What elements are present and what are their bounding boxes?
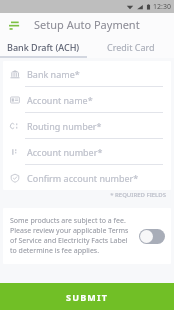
staticText: Bank Draft (ACH)	[7, 41, 80, 53]
staticText: Credit Card	[107, 41, 155, 53]
button[interactable]: Bank name*	[3, 61, 171, 87]
staticText: Some products are subject to a fee. Plea…	[10, 216, 134, 256]
staticText: 12:30	[153, 2, 171, 12]
staticText: Setup Auto Payment	[34, 17, 140, 32]
button[interactable]: Open navigation menu	[6, 17, 22, 33]
button[interactable]: SUBMIT	[0, 283, 174, 310]
staticText: Bank name*	[27, 68, 80, 80]
button[interactable]: Account name*	[3, 87, 171, 113]
button[interactable]: Routing number*	[3, 113, 171, 139]
button[interactable]: Bank Draft (ACH)	[0, 36, 87, 58]
button[interactable]: Confirm account number*	[3, 165, 171, 190]
staticText: Account number*	[27, 146, 103, 158]
staticText: Account name*	[27, 94, 93, 106]
button[interactable]: Toggle fee acknowledgement	[139, 229, 165, 244]
button[interactable]: Account number*	[3, 139, 171, 165]
button[interactable]: Credit Card	[87, 36, 174, 58]
staticText: * REQUIRED FIELDS	[110, 191, 166, 199]
staticText: Confirm account number*	[27, 172, 139, 184]
staticText: Routing number*	[27, 120, 102, 132]
staticText: SUBMIT	[66, 291, 109, 303]
